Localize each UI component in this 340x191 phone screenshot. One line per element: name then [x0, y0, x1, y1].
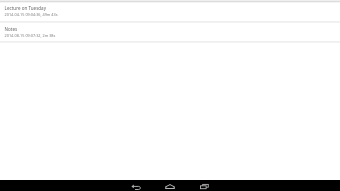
button[interactable]: Recents — [187, 180, 221, 191]
staticText: Notes — [5, 26, 18, 32]
button[interactable]: Home — [153, 180, 187, 191]
staticText: 2014-04-15 09:04:36, 49m 43s — [5, 12, 58, 17]
button[interactable]: Back — [119, 180, 153, 191]
staticText: 2014-08-15 09:07:32, 2m 38s — [5, 33, 56, 38]
button[interactable]: Lecture on Tuesday — [0, 0, 340, 19]
staticText: Lecture on Tuesday — [5, 5, 47, 11]
button[interactable]: Notes — [0, 20, 340, 39]
